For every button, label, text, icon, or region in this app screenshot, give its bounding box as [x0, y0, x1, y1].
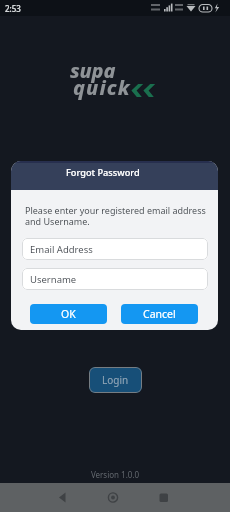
button[interactable] [98, 483, 128, 512]
staticText: OK [61, 307, 76, 321]
button[interactable]: Username [22, 268, 208, 290]
staticText: Cancel [143, 307, 176, 321]
staticText: Login [102, 373, 129, 387]
staticText: Please enter your registered email addre… [25, 204, 206, 228]
button[interactable]: Email Address [22, 238, 208, 260]
staticText: Forgot Password [66, 166, 140, 179]
button[interactable]: OK [30, 304, 107, 324]
staticText: 2:53 [5, 3, 21, 14]
staticText: Email Address [30, 243, 93, 256]
staticText: Username [30, 273, 77, 286]
button[interactable]: Cancel [121, 304, 198, 324]
button[interactable]: Login [89, 367, 142, 393]
staticText: quick [73, 74, 131, 101]
staticText: Version 1.0.0 [0, 469, 230, 480]
staticText: supa [70, 57, 116, 84]
button[interactable] [148, 483, 178, 512]
button[interactable] [48, 483, 78, 512]
